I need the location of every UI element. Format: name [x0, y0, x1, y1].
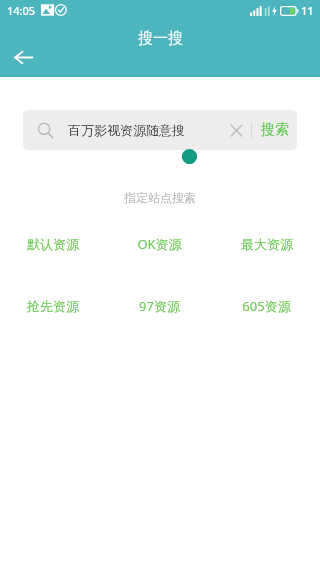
staticText: 默认资源 [27, 236, 79, 252]
button[interactable]: Back [8, 42, 38, 72]
staticText: 搜索 [261, 121, 289, 139]
button[interactable]: OK资源 [106, 233, 213, 255]
staticText: 97资源 [139, 297, 180, 315]
staticText: 指定站点搜索 [0, 190, 320, 205]
button[interactable]: 605资源 [213, 295, 320, 317]
staticText: 11 [301, 3, 314, 18]
button[interactable]: 97资源 [106, 295, 213, 317]
staticText: OK资源 [137, 235, 182, 253]
button[interactable]: Clear [221, 115, 251, 145]
staticText: 605资源 [242, 297, 291, 315]
button[interactable]: 搜索 [252, 110, 297, 150]
button[interactable]: 最大资源 [213, 233, 320, 255]
staticText: 百万影视资源随意搜 [68, 122, 221, 138]
staticText: 抢先资源 [27, 298, 79, 314]
staticText: 搜一搜 [138, 29, 183, 48]
button[interactable]: 默认资源 [0, 233, 106, 255]
button[interactable]: 抢先资源 [0, 295, 106, 317]
staticText: 最大资源 [241, 236, 293, 252]
staticText: 14:05 [7, 3, 36, 18]
